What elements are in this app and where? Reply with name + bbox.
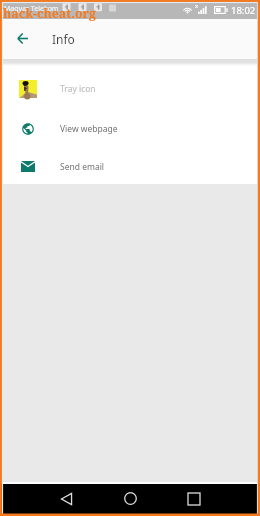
staticText: Tray icon [60,83,96,95]
button[interactable]: Tray icon [0,69,260,109]
button[interactable]: Back [50,484,82,513]
button[interactable]: Recents [178,484,210,513]
staticText: Info [52,31,75,47]
staticText: x [195,2,199,10]
button[interactable]: View webpage [0,109,260,149]
staticText: Magyar Telekom [4,4,59,14]
button[interactable]: Back [10,19,35,58]
staticText: 18:02 [231,4,256,17]
button[interactable]: Send email [0,149,260,184]
button[interactable]: Home [114,484,146,513]
staticText: hack-cheat.org [3,5,96,22]
staticText: Send email [60,161,105,173]
staticText: View webpage [60,123,118,135]
